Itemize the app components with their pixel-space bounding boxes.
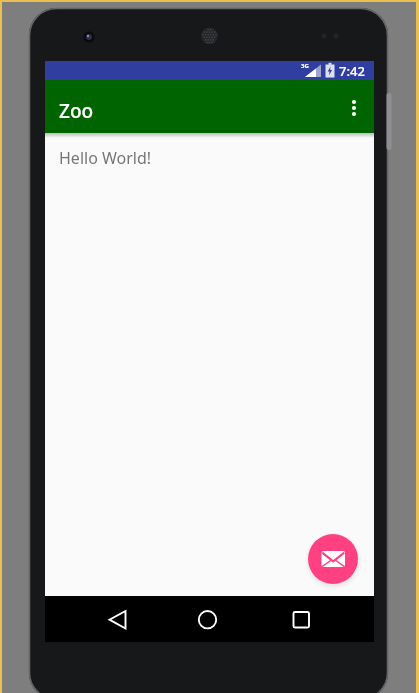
staticText: 7:42 xyxy=(339,62,365,80)
button[interactable] xyxy=(183,596,232,642)
staticText: Zoo xyxy=(59,98,94,124)
button[interactable] xyxy=(334,80,374,133)
button[interactable] xyxy=(93,596,142,642)
button[interactable] xyxy=(308,534,358,584)
button[interactable] xyxy=(277,596,326,642)
staticText: Hello World! xyxy=(59,147,152,169)
staticText: 3G xyxy=(301,62,309,70)
